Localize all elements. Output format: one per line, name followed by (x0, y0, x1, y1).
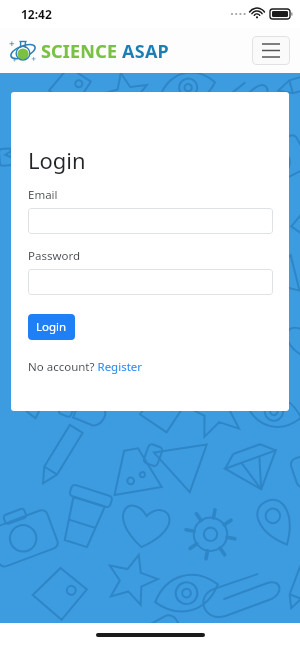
button[interactable]: Login (28, 314, 75, 340)
staticText: 12:42 (21, 6, 52, 22)
staticText: Login (36, 319, 67, 335)
staticText: Password (28, 248, 81, 264)
staticText: SCIENCE ASAP (41, 39, 169, 64)
button[interactable]: No account? Register (28, 359, 143, 375)
staticText: Email (28, 187, 58, 203)
staticText: Login (28, 145, 86, 175)
button[interactable]: Open menu (252, 36, 290, 65)
staticText: No account? Register (28, 359, 143, 375)
button[interactable] (28, 208, 273, 234)
button[interactable] (28, 269, 273, 295)
